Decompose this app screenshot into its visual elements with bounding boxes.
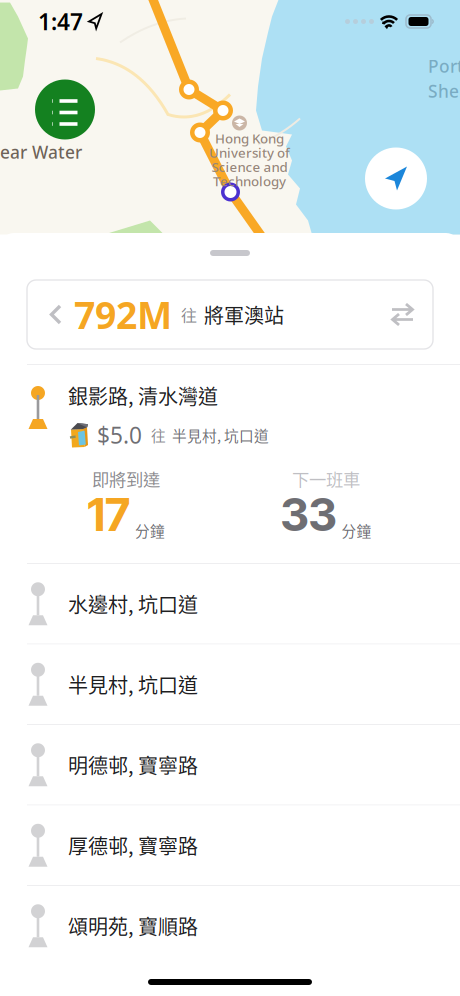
staticText: 厚德邨, 寶寧路 — [68, 831, 198, 860]
button[interactable]: 頌明苑, 寶順路 — [0, 886, 460, 965]
staticText: 水邊村, 坑口道 — [68, 589, 198, 618]
staticText: University of — [209, 144, 290, 161]
staticText: Technology — [213, 172, 286, 190]
staticText: ear Water — [0, 140, 82, 163]
staticText: Hong Kong — [215, 129, 284, 147]
staticText: Port — [428, 54, 460, 77]
staticText: 半見村, 坑口道 — [68, 670, 198, 699]
button[interactable]: 厚德邨, 寶寧路 — [0, 805, 460, 885]
staticText: Shelter — [428, 79, 460, 102]
button[interactable]: 半見村, 坑口道 — [0, 644, 460, 724]
staticText: 往 — [181, 303, 197, 326]
staticText: 頌明苑, 寶順路 — [68, 911, 198, 940]
staticText: 將軍澳站 — [204, 300, 284, 329]
staticText: 半見村, 坑口道 — [172, 424, 269, 446]
staticText: 792M — [74, 290, 172, 339]
staticText: 分鐘 — [341, 520, 371, 541]
staticText: 明德邨, 寶寧路 — [68, 750, 198, 779]
staticText: 下一班車 — [292, 466, 360, 491]
staticText: 銀影路, 清水灣道 — [68, 381, 218, 410]
staticText: 往 — [151, 424, 166, 446]
button[interactable]: Route list — [35, 79, 95, 139]
button[interactable]: 明德邨, 寶寧路 — [0, 725, 460, 804]
staticText: 17 — [87, 487, 130, 542]
staticText: 分鐘 — [135, 520, 165, 541]
staticText: $5.0 — [97, 420, 142, 450]
staticText: 1:47 — [38, 6, 83, 36]
button[interactable]: 銀影路, 清水灣道 — [0, 365, 460, 563]
staticText: 33 — [280, 487, 336, 542]
button[interactable]: 水邊村, 坑口道 — [0, 564, 460, 643]
button[interactable]: 792M — [0, 256, 460, 349]
button[interactable]: Current location — [365, 147, 427, 209]
staticText: Science and — [211, 158, 287, 176]
staticText: 即將到達 — [92, 466, 160, 491]
